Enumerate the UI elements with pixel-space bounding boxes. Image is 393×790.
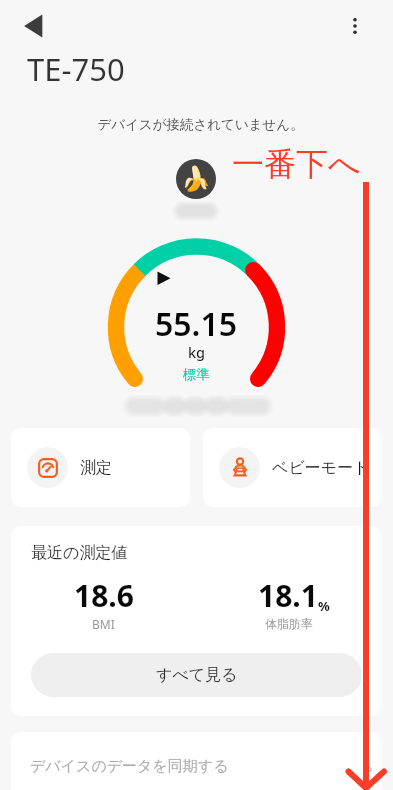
staticText: すべて見る [156,665,238,685]
button[interactable]: 測定 [11,428,190,507]
staticText: kg [188,342,206,362]
staticText: 🍌 [181,165,211,193]
staticText: ベビーモード [272,458,370,478]
staticText: 一番下へ [232,144,361,184]
staticText: 18.6 [74,575,134,616]
staticText: % [318,597,330,615]
button[interactable]: Profile [176,159,216,199]
button[interactable]: ベビーモード [203,428,382,507]
staticText: 最近の測定値 [31,543,128,563]
staticText: TE-750 [27,48,125,90]
staticText: 標準 [183,366,210,383]
staticText: 55.15 [155,302,238,346]
button[interactable]: More options [337,8,373,44]
staticText: BMI [92,616,115,632]
staticText: 18.1 [258,575,318,616]
staticText: 体脂肪率 [265,616,313,631]
staticText: デバイスが接続されていません。 [4,116,393,133]
button[interactable]: Back [14,6,54,46]
staticText: デバイスのデータを同期する [30,757,229,776]
staticText: 測定 [80,458,112,478]
button[interactable]: すべて見る [31,653,362,697]
button[interactable]: デバイスのデータを同期する [11,732,382,790]
